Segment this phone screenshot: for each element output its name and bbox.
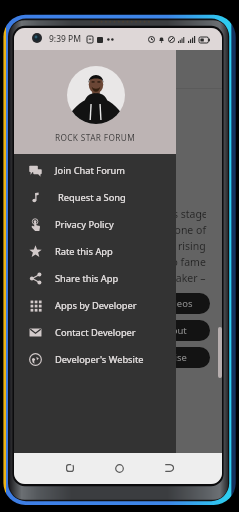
button[interactable]: Read More About (86, 320, 210, 341)
staticText: Read More About (109, 324, 187, 337)
button[interactable]: Recents (56, 454, 84, 482)
staticText: Contact Developer (55, 326, 136, 339)
staticText: the world's most popular rising (52, 239, 206, 253)
button[interactable]: Privacy Policy (14, 211, 176, 238)
staticText: Developer's Website (55, 353, 144, 366)
staticText: Apps by Developer (55, 299, 137, 312)
staticText: 9:39 PM (49, 33, 82, 45)
staticText: Request a Song (58, 191, 126, 204)
staticText: Join Chat Forum (55, 164, 126, 177)
staticText: for the very first time. He is one of (38, 223, 206, 237)
button[interactable]: Back (155, 454, 183, 482)
staticText: Privacy Policy (55, 218, 114, 231)
button[interactable]: Contact Developer (14, 319, 176, 346)
staticText: as singer, songwriter, maker – (60, 271, 206, 285)
button[interactable]: Rate this App (14, 238, 176, 265)
button[interactable]: Share this App (14, 265, 176, 292)
button[interactable]: Watch Music Videos (86, 293, 210, 314)
button[interactable]: Developer's Website (14, 346, 176, 373)
button[interactable]: Request a Song (14, 184, 176, 211)
button[interactable]: Buy Merchandise (86, 347, 210, 368)
button[interactable]: Apps by Developer (14, 292, 176, 319)
staticText: Watch Music Videos (104, 297, 193, 310)
staticText: stars with a meteoric rise to fame (41, 255, 206, 269)
staticText: elements that exploded on this stage (25, 207, 206, 221)
button[interactable]: Home (105, 454, 133, 482)
staticText: Rate this App (55, 245, 113, 258)
staticText: ROCK STAR FORUM (14, 132, 176, 143)
button[interactable]: Join Chat Forum (14, 157, 176, 184)
staticText: Buy Merchandise (110, 351, 187, 364)
staticText: Share this App (55, 272, 119, 285)
